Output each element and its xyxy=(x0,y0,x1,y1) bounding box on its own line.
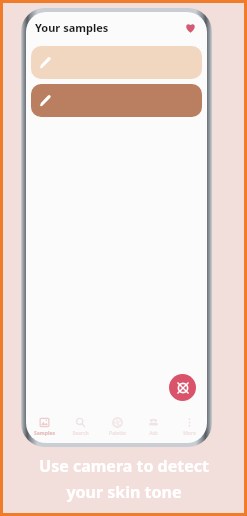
button[interactable]: Ask xyxy=(135,411,171,443)
button[interactable]: Search xyxy=(62,411,98,443)
staticText: Search xyxy=(72,430,89,437)
button[interactable]: Edit sample xyxy=(31,84,202,117)
button[interactable]: Edit sample xyxy=(31,46,202,79)
button[interactable]: Samples xyxy=(26,411,62,443)
staticText: Your samples xyxy=(35,20,109,35)
staticText: Samples xyxy=(34,430,55,437)
staticText: Palette xyxy=(109,430,126,437)
button[interactable]: Scan with camera xyxy=(169,374,196,401)
staticText: Ask xyxy=(149,430,158,437)
button[interactable]: Palette xyxy=(99,411,135,443)
button[interactable]: Favourites xyxy=(180,17,200,37)
button[interactable]: More xyxy=(171,411,207,443)
staticText: More xyxy=(183,430,196,437)
staticText: Use camera to detect xyxy=(39,455,209,477)
staticText: your skin tone xyxy=(66,481,182,503)
